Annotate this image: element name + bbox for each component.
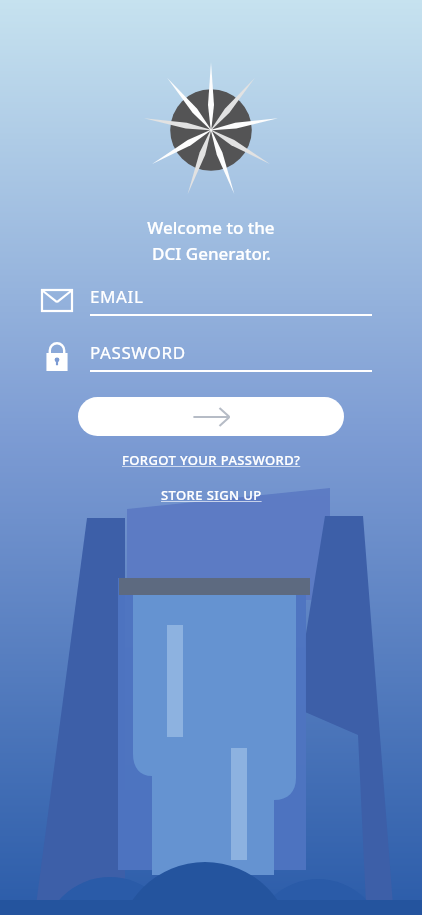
- staticText: EMAIL: [90, 285, 144, 308]
- staticText: FORGOT YOUR PASSWORD?: [122, 451, 301, 469]
- staticText: Welcome to the: [147, 216, 275, 239]
- button[interactable]: Password: [40, 339, 372, 373]
- staticText: PASSWORD: [90, 341, 186, 364]
- other: Email: [40, 283, 74, 317]
- button[interactable]: Email: [40, 283, 372, 317]
- staticText: STORE SIGN UP: [161, 486, 262, 504]
- button[interactable]: Sign in: [78, 397, 344, 436]
- button[interactable]: STORE SIGN UP: [157, 484, 266, 506]
- button[interactable]: FORGOT YOUR PASSWORD?: [118, 449, 305, 471]
- staticText: DCI Generator.: [152, 242, 271, 265]
- other: Password: [40, 339, 74, 373]
